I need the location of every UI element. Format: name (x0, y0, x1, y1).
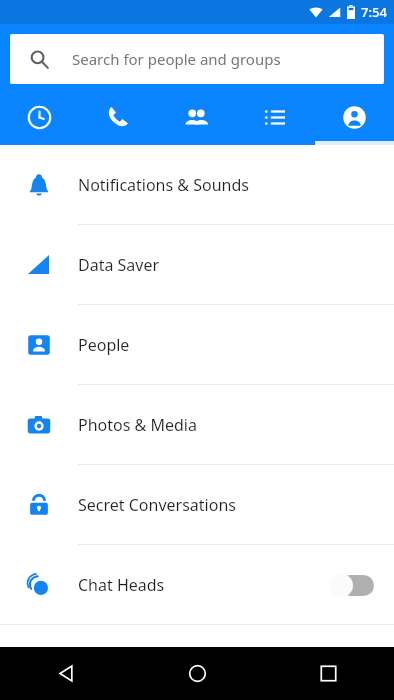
staticText: Chat Heads (78, 574, 165, 596)
button[interactable]: Notifications & Sounds (0, 145, 394, 224)
button[interactable]: Secret Conversations (0, 465, 394, 544)
button[interactable]: Chat Heads (0, 545, 394, 624)
button[interactable]: Profile (315, 93, 394, 145)
button[interactable]: Data Saver (0, 225, 394, 304)
button[interactable]: Recent (0, 93, 78, 145)
staticText: Photos & Media (78, 414, 197, 436)
button[interactable]: Groups (236, 93, 315, 145)
staticText: People (78, 334, 130, 356)
staticText: Search for people and groups (72, 49, 281, 69)
button[interactable]: Home (132, 647, 263, 700)
staticText: Secret Conversations (78, 494, 236, 516)
button[interactable]: Photos & Media (0, 385, 394, 464)
button[interactable]: Search for people and groups (10, 34, 384, 84)
button[interactable]: Calls (78, 93, 157, 145)
button[interactable]: Recents (263, 647, 394, 700)
button[interactable]: Back (0, 647, 132, 700)
button[interactable]: Contacts (157, 93, 236, 145)
staticText: 7:54 (361, 3, 387, 21)
staticText: Data Saver (78, 254, 160, 276)
staticText: Notifications & Sounds (78, 174, 249, 196)
button[interactable]: People (0, 305, 394, 384)
button[interactable]: Chat Heads toggle (330, 573, 374, 597)
